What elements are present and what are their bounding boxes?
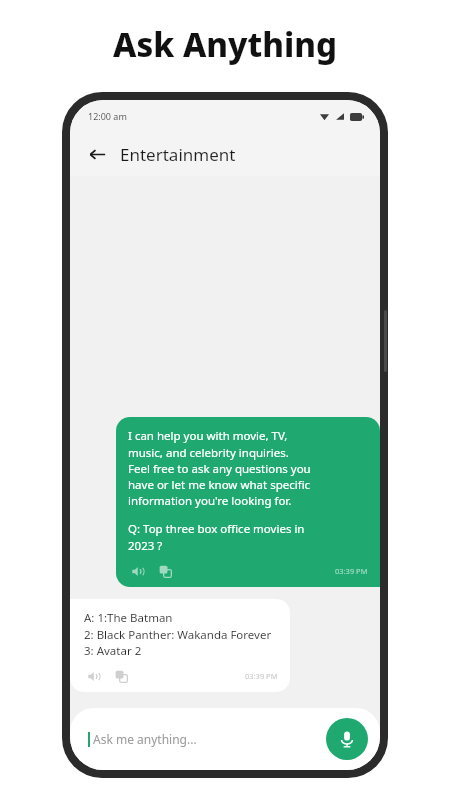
staticText: 12:00 am bbox=[88, 110, 127, 122]
staticText: I can help you with movie, TV, music, an… bbox=[128, 428, 311, 508]
staticText: 03:39 PM bbox=[335, 566, 368, 576]
staticText: Ask me anything... bbox=[93, 731, 197, 747]
staticText: Entertainment bbox=[120, 143, 236, 166]
button[interactable]: Read aloud bbox=[128, 562, 146, 580]
button[interactable]: I can help you with movie, TV, music, an… bbox=[116, 417, 380, 587]
staticText: Q: Top three box office movies in 2023 ? bbox=[128, 521, 305, 553]
button[interactable]: Voice input bbox=[326, 718, 368, 760]
button[interactable]: Copy bbox=[156, 562, 174, 580]
staticText: A: 1:The Batman 2: Black Panther: Wakand… bbox=[84, 610, 272, 658]
button[interactable]: Back bbox=[80, 137, 114, 171]
staticText: Ask Anything bbox=[113, 22, 337, 67]
button[interactable]: A: 1:The Batman 2: Black Panther: Wakand… bbox=[70, 599, 290, 692]
button[interactable]: Copy bbox=[112, 667, 130, 685]
button[interactable]: Ask me anything... bbox=[88, 722, 326, 756]
staticText: 03:39 PM bbox=[245, 671, 278, 681]
button[interactable]: Read aloud bbox=[84, 667, 102, 685]
